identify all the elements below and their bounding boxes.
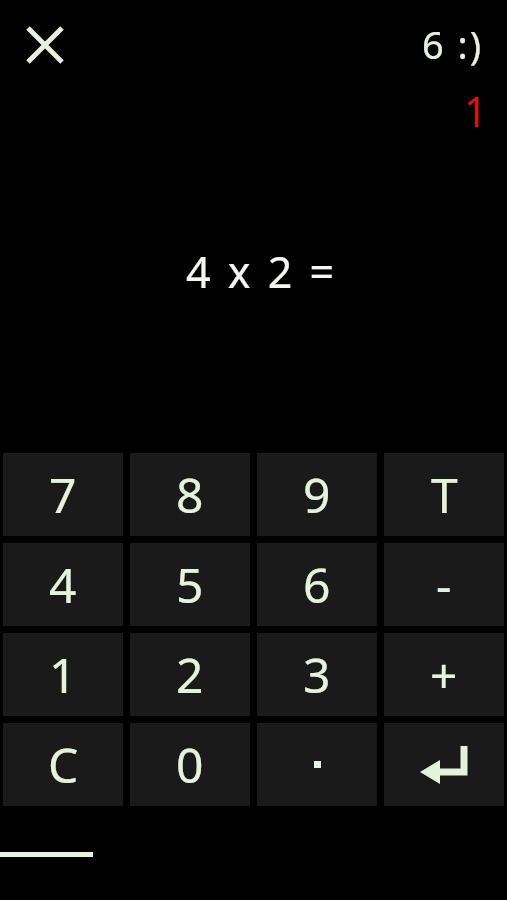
button[interactable]: 1 xyxy=(3,633,123,716)
button[interactable]: 9 xyxy=(257,453,377,536)
button[interactable]: 5 xyxy=(130,543,250,626)
button[interactable] xyxy=(384,723,504,806)
button[interactable]: C xyxy=(3,723,123,806)
staticText: 4 x 2 = xyxy=(186,242,338,301)
staticText: 9 xyxy=(303,462,331,527)
staticText: 1 xyxy=(464,83,488,139)
button[interactable]: 4 xyxy=(3,543,123,626)
staticText: 6 :) xyxy=(422,18,484,70)
button[interactable]: 7 xyxy=(3,453,123,536)
staticText: 1 xyxy=(49,642,77,707)
button[interactable]: 0 xyxy=(130,723,250,806)
staticText: 0 xyxy=(176,732,204,797)
button[interactable]: 8 xyxy=(130,453,250,536)
button[interactable]: 2 xyxy=(130,633,250,716)
staticText: + xyxy=(430,642,458,707)
staticText: T xyxy=(431,462,458,527)
staticText: 4 xyxy=(49,552,77,617)
staticText: 6 xyxy=(303,552,331,617)
button[interactable] xyxy=(14,14,76,76)
button[interactable]: - xyxy=(384,543,504,626)
staticText: 7 xyxy=(49,462,77,527)
staticText: 3 xyxy=(303,642,331,707)
staticText: 5 xyxy=(176,552,204,617)
button[interactable] xyxy=(257,723,377,806)
staticText: 8 xyxy=(176,462,204,527)
staticText: - xyxy=(436,552,452,617)
staticText: 2 xyxy=(176,642,204,707)
staticText: C xyxy=(48,732,79,797)
button[interactable]: 6 xyxy=(257,543,377,626)
button[interactable]: 3 xyxy=(257,633,377,716)
button[interactable]: T xyxy=(384,453,504,536)
button[interactable]: + xyxy=(384,633,504,716)
